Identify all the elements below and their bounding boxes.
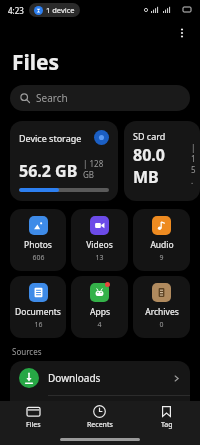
staticText: Recents	[87, 420, 113, 430]
button[interactable]: Audio	[133, 209, 190, 271]
staticText: 80.0 MB	[133, 144, 191, 188]
staticText: Downloads	[48, 371, 101, 385]
staticText: Audio	[150, 239, 174, 251]
button[interactable]: Files	[0, 401, 66, 433]
button[interactable]: Apps	[71, 276, 128, 338]
button[interactable]: Photos	[10, 209, 66, 271]
staticText: 9	[159, 253, 164, 263]
button[interactable]: Search	[10, 85, 190, 111]
staticText: | 128 GB	[83, 158, 109, 180]
staticText: 606	[32, 253, 45, 263]
staticText: SD card	[133, 130, 166, 142]
button[interactable]: Videos	[71, 209, 128, 271]
staticText: Documents	[15, 306, 61, 318]
staticText: Device storage	[19, 132, 82, 144]
staticText: Files	[26, 420, 41, 430]
staticText: Videos	[86, 239, 113, 251]
button[interactable]: Recents	[66, 401, 133, 433]
button[interactable]: Documents	[10, 276, 66, 338]
button[interactable]: Device storage	[10, 121, 118, 201]
staticText: 0	[159, 320, 164, 330]
staticText: 4	[97, 320, 102, 330]
button[interactable]: Archives	[133, 276, 190, 338]
staticText: Sources	[12, 346, 42, 357]
staticText: 56.2 GB	[19, 160, 78, 182]
button[interactable]: Tag	[133, 401, 200, 433]
staticText: 1 device	[46, 5, 75, 15]
staticText: 16	[34, 320, 43, 330]
staticText: Apps	[90, 306, 110, 318]
staticText: Files	[12, 48, 60, 77]
button[interactable]: Internal Storage	[10, 396, 190, 430]
staticText: Archives	[145, 306, 179, 318]
button[interactable]: SD card	[124, 121, 200, 201]
staticText: Photos	[24, 239, 52, 251]
staticText: Tag	[161, 420, 173, 430]
staticText: 13	[95, 253, 104, 263]
button[interactable]: More options	[172, 23, 192, 43]
staticText: Internal Storage	[48, 406, 125, 420]
button[interactable]: Downloads	[10, 361, 190, 395]
staticText: 4:23	[8, 5, 24, 16]
staticText: Search	[36, 91, 68, 105]
